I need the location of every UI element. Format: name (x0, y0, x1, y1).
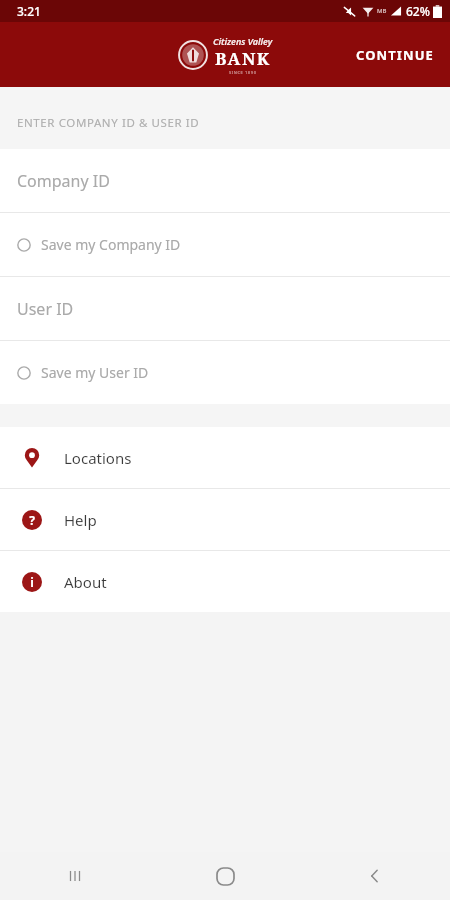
button[interactable]: Recent apps (0, 852, 150, 900)
staticText: BANK (215, 47, 271, 70)
staticText: Save my Company ID (41, 235, 181, 254)
button[interactable]: CONTINUE (340, 34, 450, 76)
staticText: SINCE 1890 (229, 70, 257, 75)
button[interactable]: User ID (0, 277, 450, 340)
staticText: Save my User ID (41, 363, 149, 382)
staticText: Help (64, 510, 97, 530)
staticText: Citizens Valley (213, 35, 273, 47)
staticText: About (64, 572, 107, 592)
staticText: Company ID (17, 170, 110, 192)
staticText: i (30, 574, 34, 590)
button[interactable]: Home (150, 852, 300, 900)
button[interactable]: Save my User ID (0, 341, 450, 404)
staticText: Locations (64, 448, 132, 468)
staticText: ? (29, 512, 35, 528)
staticText: ENTER COMPANY ID & USER ID (17, 115, 200, 131)
staticText: 62% (406, 3, 430, 19)
button[interactable]: Save my Company ID (0, 213, 450, 276)
button[interactable]: Locations (0, 427, 450, 488)
button[interactable]: ? (0, 489, 450, 550)
staticText: MB (377, 7, 387, 15)
staticText: User ID (17, 298, 74, 320)
button[interactable]: i (0, 551, 450, 612)
button[interactable]: Back (300, 852, 450, 900)
staticText: 3:21 (17, 3, 41, 19)
button[interactable]: Company ID (0, 149, 450, 212)
staticText: CONTINUE (356, 46, 434, 64)
